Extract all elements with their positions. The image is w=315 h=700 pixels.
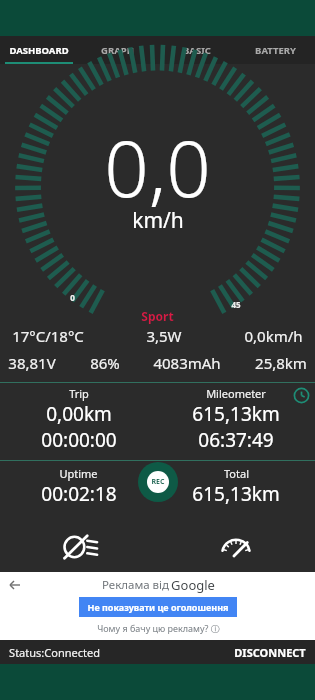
button[interactable]: GRAPH <box>78 36 157 64</box>
staticText: 00:00:00 <box>41 427 117 453</box>
staticText: Mileometer <box>206 386 266 401</box>
staticText: 86% <box>90 353 120 373</box>
staticText: Реклама від <box>100 577 171 593</box>
staticText: Total <box>224 466 249 481</box>
button[interactable]: Record <box>138 462 178 502</box>
button[interactable]: DASHBOARD <box>0 36 78 64</box>
staticText: 45 <box>231 299 241 310</box>
staticText: REC <box>151 477 165 487</box>
staticText: BATTERY <box>255 44 296 57</box>
button[interactable]: Headlight off <box>56 532 102 562</box>
staticText: 0,00km <box>46 401 112 427</box>
staticText: BASIC <box>183 44 211 57</box>
staticText: 0,0km/h <box>244 326 303 346</box>
button[interactable]: Back <box>6 576 24 594</box>
staticText: 25,8km <box>255 353 307 373</box>
staticText: Google <box>171 576 215 594</box>
staticText: 17°C/18°C <box>12 326 84 346</box>
button[interactable]: Не показувати це оголошення <box>79 597 237 617</box>
staticText: Trip <box>69 386 89 401</box>
staticText: DISCONNECT <box>234 645 306 660</box>
staticText: Status:Connected <box>9 645 100 660</box>
button[interactable]: Чому я бачу цю рекламу? ⓘ <box>79 618 237 638</box>
button[interactable]: BASIC <box>157 36 236 64</box>
button[interactable]: DISCONNECT <box>234 645 306 660</box>
staticText: 38,81V <box>8 353 56 373</box>
staticText: 0 <box>70 292 75 303</box>
staticText: Не показувати це оголошення <box>87 601 229 613</box>
button[interactable]: BATTERY <box>236 36 315 64</box>
staticText: 3,5W <box>146 326 182 346</box>
staticText: Чому я бачу цю рекламу? ⓘ <box>97 622 220 634</box>
staticText: 4083mAh <box>153 353 221 373</box>
staticText: 00:02:18 <box>41 481 117 507</box>
staticText: GRAPH <box>101 44 134 57</box>
staticText: Uptime <box>59 466 98 481</box>
staticText: 615,13km <box>192 401 280 427</box>
staticText: km/h <box>132 206 184 235</box>
button[interactable]: Speed mode <box>213 532 259 562</box>
staticText: 06:37:49 <box>198 427 274 453</box>
staticText: DASHBOARD <box>9 44 69 57</box>
staticText: 0,0 <box>104 114 211 220</box>
staticText: Sport <box>141 308 174 324</box>
button[interactable]: Reset trip <box>293 387 310 404</box>
staticText: 615,13km <box>192 481 280 507</box>
